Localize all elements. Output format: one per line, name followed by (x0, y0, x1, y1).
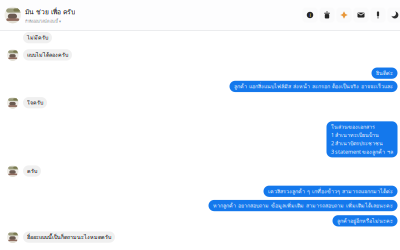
button[interactable]: ไม่มีครับ (23, 32, 52, 43)
staticText: แบบไม่ได้ลองครับ (27, 51, 68, 59)
staticText: 3 statement ของลูกค้า ฯล (331, 148, 393, 156)
staticText: ใจครับ (27, 99, 43, 107)
staticText: หากลูกค้า อยากสอบถาม ข้อมูลเพิ่มเติม สาม… (213, 201, 393, 210)
button[interactable]: ลูกค้า แอกสิ่งแนบไฟล์มิส ส่งหน้า ละกรอก … (229, 81, 397, 92)
button[interactable]: มัน ช่วย เพื่อ ครับ (0, 3, 75, 27)
button[interactable]: Info (302, 7, 317, 22)
button[interactable]: Mark as unread (353, 7, 368, 22)
button[interactable]: หากลูกค้า อยากสอบถาม ข้อมูลเพิ่มเติม สาม… (208, 200, 397, 211)
staticText: ลูกค้าอยู่อีกหรือไม่นะคะ (337, 217, 393, 225)
staticText: อื่ออะแบบนี้เป็นก็ดถามนะไงหมดครับ (27, 233, 111, 241)
staticText: 2 สำเนาบัตรประชาชน (331, 139, 383, 148)
button[interactable]: ครับ (23, 165, 41, 177)
staticText: กำลังออนไลน์ตอนนี้ ▾ (25, 18, 61, 24)
button[interactable]: ใจครับ (23, 97, 47, 108)
button[interactable]: Delete (319, 7, 334, 22)
button[interactable]: แบบไม่ได้ลองครับ (23, 49, 72, 61)
button[interactable]: ยินดีค่ะ (371, 67, 397, 79)
staticText: ในส่วนของเอกสาร (331, 123, 375, 131)
button[interactable]: เควลิสรวงลูกค้า ๆ เกทื่องข้าวๆ สามารถแจก… (263, 186, 397, 197)
button[interactable]: Snooze (387, 7, 400, 22)
button[interactable]: Pin conversation (370, 7, 385, 22)
staticText: ครับ (27, 167, 37, 175)
staticText: 1 สำเนาทะเบียนบ้าน (331, 131, 379, 139)
staticText: มัน ช่วย เพื่อ ครับ (25, 7, 75, 17)
staticText: ยินดีค่ะ (376, 69, 393, 77)
button[interactable]: ลูกค้าอยู่อีกหรือไม่นะคะ (332, 215, 397, 226)
staticText: ลูกค้า แอกสิ่งแนบไฟล์มิส ส่งหน้า ละกรอก … (234, 82, 393, 91)
staticText: ไม่มีครับ (27, 33, 48, 42)
button[interactable]: AI assistant (336, 7, 351, 22)
staticText: เควลิสรวงลูกค้า ๆ เกทื่องข้าวๆ สามารถแจก… (268, 187, 393, 195)
button[interactable]: ในส่วนของเอกสาร (326, 121, 397, 157)
button[interactable]: อื่ออะแบบนี้เป็นก็ดถามนะไงหมดครับ (23, 231, 115, 243)
